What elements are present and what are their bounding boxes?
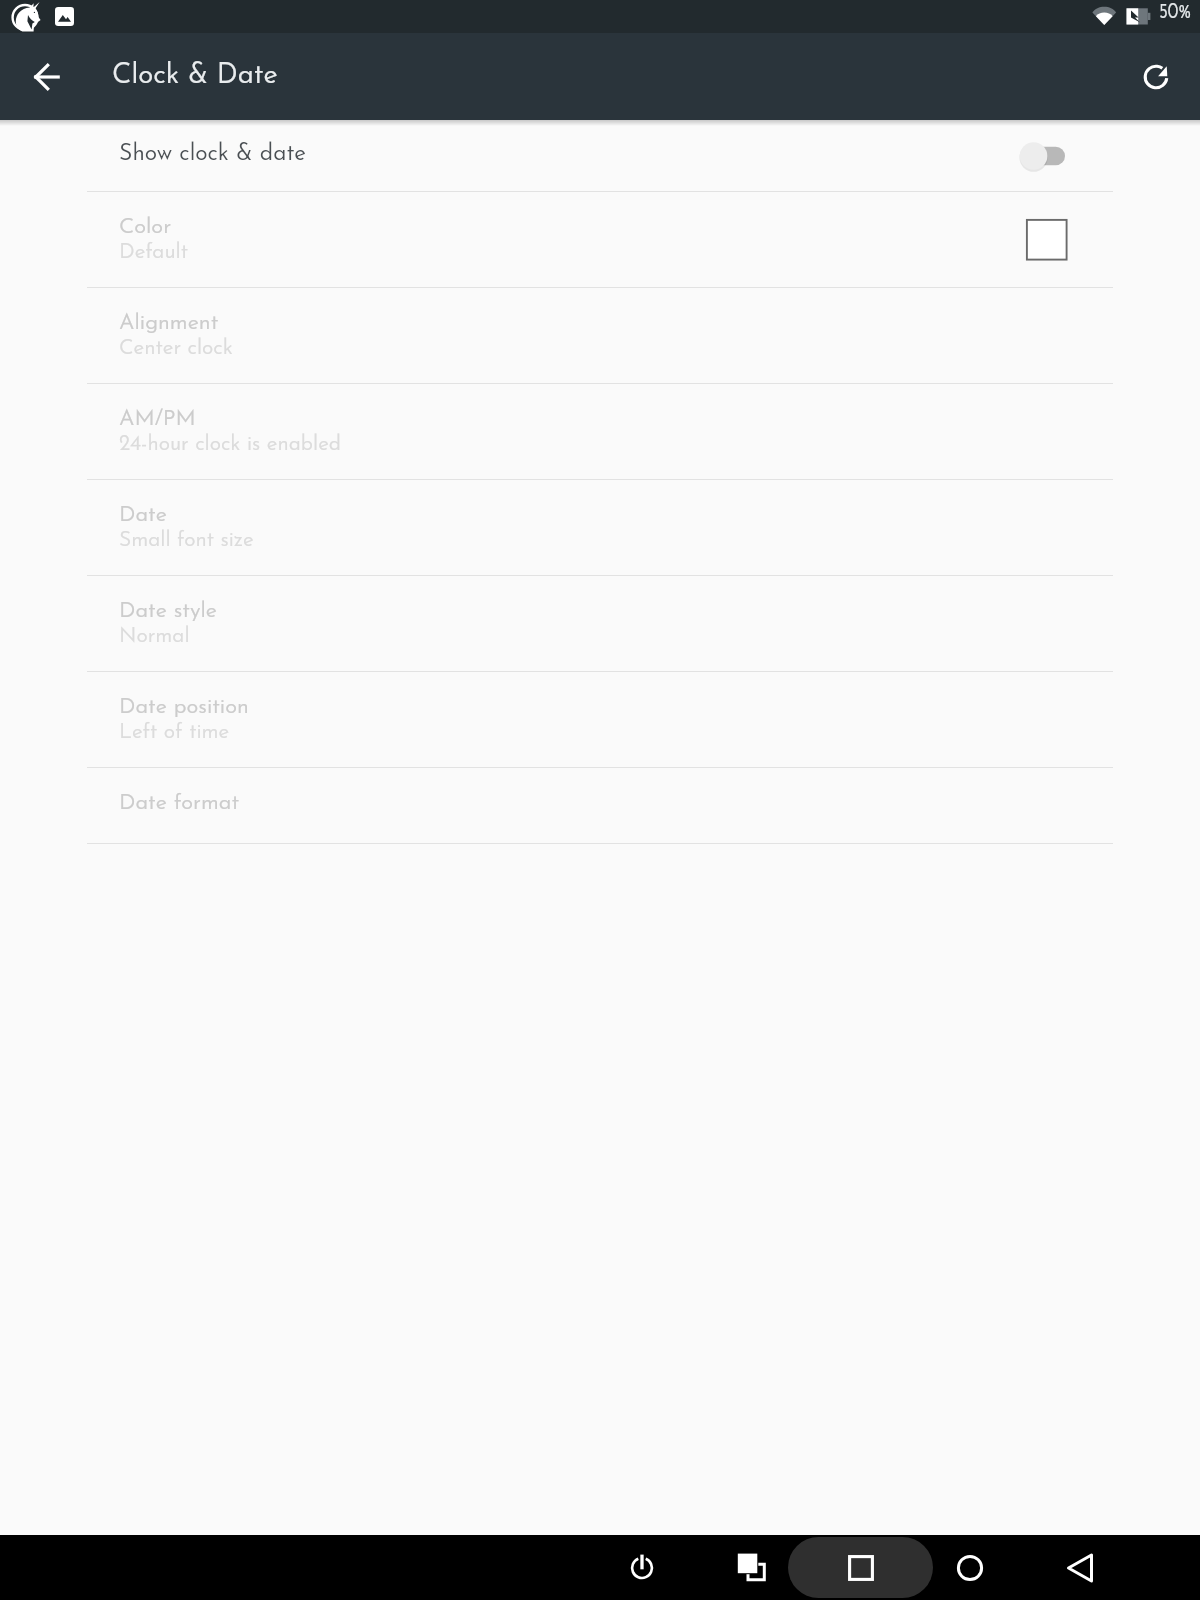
staticText: Normal (119, 626, 190, 647)
button[interactable]: AM/PM (0, 384, 1200, 479)
staticText: Small font size (119, 530, 254, 551)
staticText: Clock & Date (112, 62, 278, 90)
staticText: Date (119, 504, 167, 526)
button[interactable]: Refresh (1128, 49, 1184, 105)
button[interactable]: Colour swatch (1026, 219, 1068, 261)
button[interactable]: Show clock & date (1014, 135, 1076, 177)
staticText: Alignment (119, 312, 219, 334)
button[interactable]: Color (0, 192, 1200, 287)
staticText: Show clock & date (119, 143, 307, 166)
button[interactable]: Power (614, 1535, 670, 1600)
button[interactable]: Home (942, 1535, 998, 1600)
staticText: Date format (119, 792, 239, 814)
button[interactable]: Date format (0, 768, 1200, 843)
button[interactable]: Recent apps (788, 1537, 933, 1598)
staticText: Color (119, 216, 172, 238)
button[interactable]: Screenshot (724, 1535, 780, 1600)
staticText: Default (119, 242, 188, 263)
staticText: Center clock (119, 338, 233, 359)
staticText: Left of time (119, 722, 230, 743)
button[interactable]: Show clock & date (0, 120, 1200, 191)
staticText: Date position (119, 696, 249, 718)
button[interactable]: Navigate up (21, 49, 77, 105)
button[interactable]: Date position (0, 672, 1200, 767)
staticText: 24-hour clock is enabled (119, 434, 342, 455)
staticText: AM/PM (119, 408, 196, 430)
button[interactable]: Back (1052, 1535, 1108, 1600)
staticText: 50% (1159, 2, 1192, 23)
staticText: Date style (119, 600, 217, 622)
button[interactable]: Alignment (0, 288, 1200, 383)
